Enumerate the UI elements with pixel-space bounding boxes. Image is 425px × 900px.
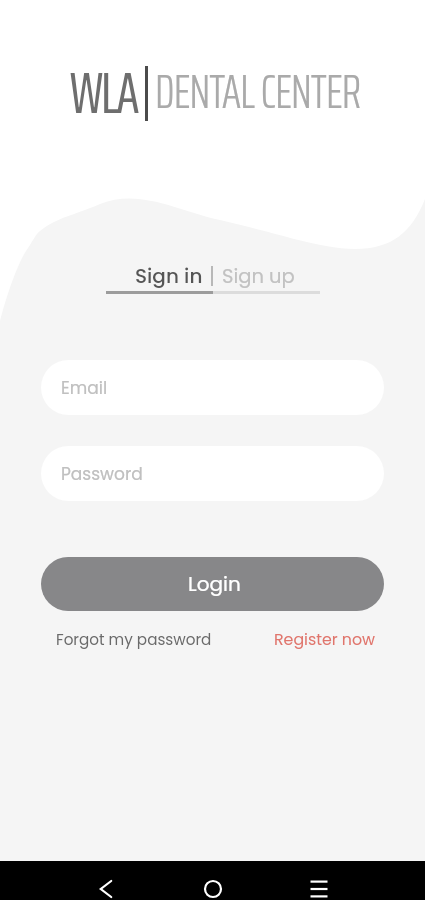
staticText: Login (188, 570, 241, 598)
button[interactable]: Email (41, 360, 384, 415)
button[interactable]: Home (185, 861, 241, 900)
button[interactable]: Login (41, 557, 384, 611)
staticText: DENTAL CENTER (155, 54, 361, 130)
button[interactable]: Register now (274, 628, 376, 650)
button[interactable]: Recent apps (291, 861, 347, 900)
button[interactable]: Forgot my password (56, 629, 212, 650)
staticText: WLA (70, 48, 138, 138)
button[interactable]: Password (41, 446, 384, 501)
staticText: Register now (274, 628, 376, 650)
button[interactable]: Sign up (213, 259, 315, 294)
staticText: Forgot my password (56, 629, 212, 650)
staticText: Sign in (135, 262, 203, 290)
button[interactable]: Back (78, 861, 134, 900)
staticText: Password (61, 462, 143, 486)
staticText: Email (61, 376, 108, 400)
staticText: Sign up (222, 263, 295, 290)
button[interactable]: Sign in (110, 258, 211, 294)
